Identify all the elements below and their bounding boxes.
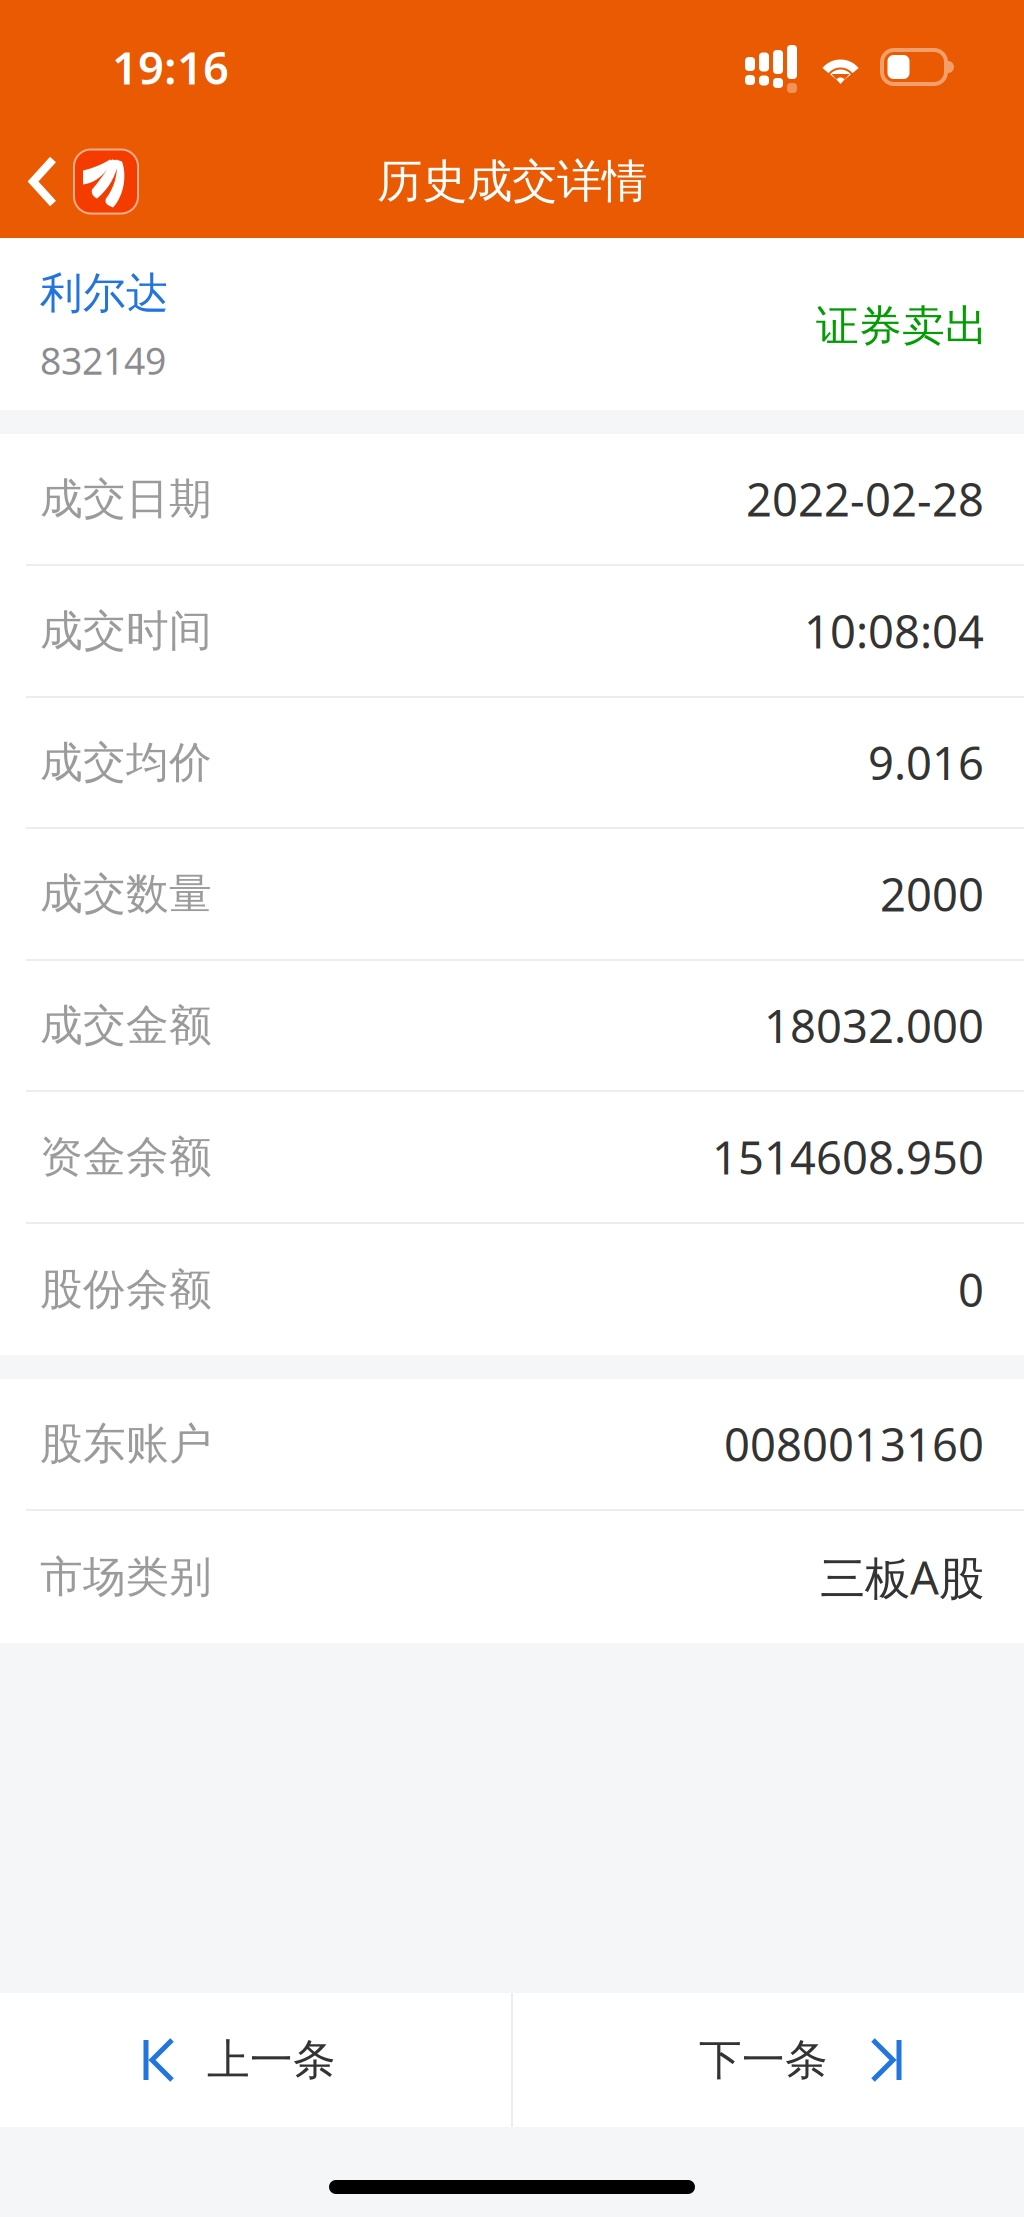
staticText: 19:16 bbox=[112, 37, 229, 97]
staticText: 成交均价 bbox=[40, 736, 212, 789]
staticText: 历史成交详情 bbox=[377, 154, 647, 209]
staticText: 股份余额 bbox=[40, 1263, 212, 1316]
staticText: 2022-02-28 bbox=[746, 469, 984, 529]
staticText: 832149 bbox=[40, 335, 166, 385]
button[interactable]: 下一条 bbox=[513, 1993, 1024, 2127]
staticText: 下一条 bbox=[699, 2034, 828, 2086]
staticText: 0080013160 bbox=[724, 1414, 984, 1474]
staticText: 三板A股 bbox=[820, 1547, 984, 1607]
staticText: 证券卖出 bbox=[816, 300, 988, 352]
staticText: 成交时间 bbox=[40, 605, 212, 657]
button[interactable]: 返回 bbox=[0, 129, 158, 233]
staticText: 成交日期 bbox=[40, 473, 212, 525]
staticText: 10:08:04 bbox=[804, 601, 984, 661]
staticText: 0 bbox=[958, 1259, 984, 1320]
staticText: 成交数量 bbox=[40, 868, 212, 920]
staticText: 2000 bbox=[880, 864, 984, 924]
staticText: 利尔达 bbox=[40, 267, 169, 319]
staticText: 成交金额 bbox=[40, 999, 212, 1052]
staticText: 18032.000 bbox=[764, 995, 984, 1056]
staticText: 股东账户 bbox=[40, 1418, 212, 1470]
staticText: 1514608.950 bbox=[712, 1127, 984, 1187]
button[interactable]: 上一条 bbox=[0, 1993, 511, 2127]
staticText: 上一条 bbox=[207, 2034, 336, 2086]
staticText: 9.016 bbox=[868, 732, 984, 793]
staticText: 资金余额 bbox=[40, 1131, 212, 1183]
staticText: 市场类别 bbox=[40, 1551, 212, 1603]
